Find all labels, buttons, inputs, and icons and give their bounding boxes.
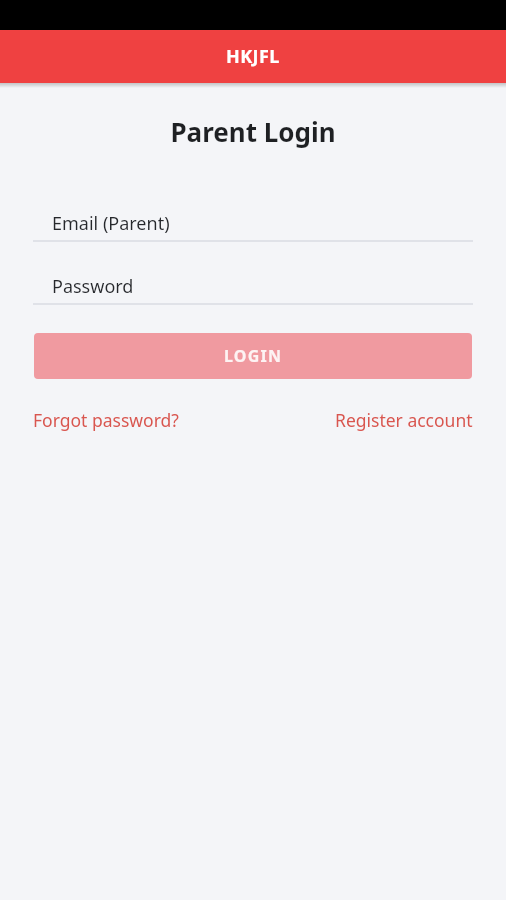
staticText: Parent Login	[170, 114, 336, 149]
staticText: Forgot password?	[33, 408, 179, 432]
button[interactable]: Register account	[324, 399, 484, 441]
staticText: Email (Parent)	[52, 211, 170, 236]
staticText: Password	[52, 274, 134, 299]
staticText: Register account	[335, 408, 473, 432]
staticText: LOGIN	[224, 345, 283, 367]
button[interactable]: Password	[33, 270, 473, 305]
staticText: HKJFL	[226, 44, 280, 69]
button[interactable]: LOGIN	[34, 333, 472, 379]
button[interactable]: Forgot password?	[22, 399, 190, 441]
button[interactable]: Email (Parent)	[33, 207, 473, 242]
